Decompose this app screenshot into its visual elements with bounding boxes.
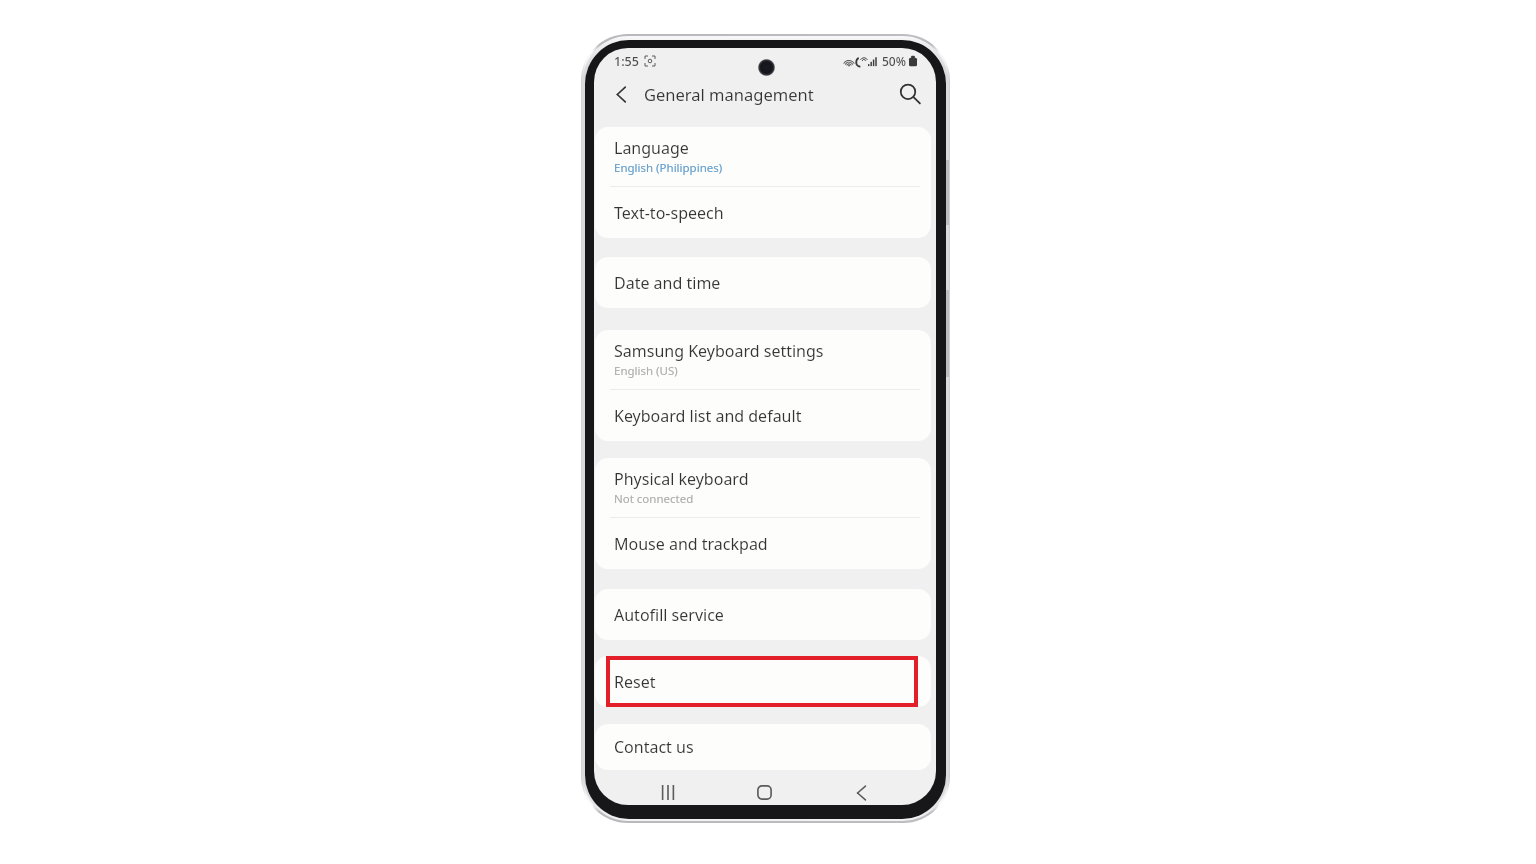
- button[interactable]: Back: [603, 76, 639, 112]
- button[interactable]: Text-to-speech: [595, 187, 931, 238]
- staticText: Language: [614, 137, 689, 159]
- staticText: 1:55: [614, 53, 639, 70]
- staticText: General management: [644, 83, 814, 105]
- button[interactable]: Physical keyboard: [595, 458, 931, 518]
- button[interactable]: Recent apps: [620, 780, 716, 805]
- button[interactable]: Language: [595, 127, 931, 187]
- button[interactable]: Back: [813, 780, 910, 805]
- staticText: Physical keyboard: [614, 468, 749, 490]
- staticText: Text-to-speech: [614, 202, 724, 224]
- button[interactable]: Reset: [595, 656, 931, 707]
- button[interactable]: Samsung Keyboard settings: [595, 330, 931, 390]
- staticText: Contact us: [614, 736, 694, 758]
- staticText: Reset: [614, 671, 656, 693]
- button[interactable]: Contact us: [595, 724, 931, 770]
- staticText: Date and time: [614, 272, 721, 294]
- staticText: Not connected: [614, 491, 694, 507]
- staticText: Mouse and trackpad: [614, 533, 768, 555]
- button[interactable]: Autofill service: [595, 589, 931, 640]
- button[interactable]: Mouse and trackpad: [595, 518, 931, 569]
- staticText: Autofill service: [614, 604, 724, 626]
- button[interactable]: Search: [891, 75, 929, 113]
- staticText: Samsung Keyboard settings: [614, 340, 824, 362]
- staticText: English (US): [614, 363, 678, 379]
- staticText: Keyboard list and default: [614, 405, 802, 427]
- button[interactable]: Date and time: [595, 257, 931, 308]
- button[interactable]: Home: [716, 780, 813, 805]
- staticText: English (Philippines): [614, 160, 723, 176]
- button[interactable]: Keyboard list and default: [595, 390, 931, 441]
- staticText: 50%: [882, 53, 906, 69]
